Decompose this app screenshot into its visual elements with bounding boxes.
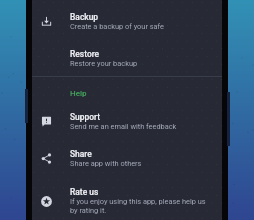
staticText: Rate us [70,187,99,197]
other: Share [40,152,53,165]
staticText: Share [70,149,92,159]
button[interactable]: Support [32,103,222,140]
staticText: Support [70,112,101,122]
staticText: Restore your backup [70,59,138,68]
staticText: Send me an email with feedback [70,122,177,131]
other: Backup [40,15,53,28]
staticText: Share app with others [70,159,142,168]
staticText: Create a backup of your safe [70,22,164,31]
staticText: Help [70,89,87,98]
button[interactable]: Backup [32,3,222,40]
other: Support [40,115,53,128]
button[interactable]: Rate us [32,178,222,220]
other: Rate us [40,195,53,208]
staticText: If you enjoy using this app, please help… [70,197,214,215]
button[interactable]: Share [32,140,222,177]
staticText: Backup [70,12,99,22]
button[interactable]: Restore [32,40,222,77]
staticText: Restore [70,49,100,59]
